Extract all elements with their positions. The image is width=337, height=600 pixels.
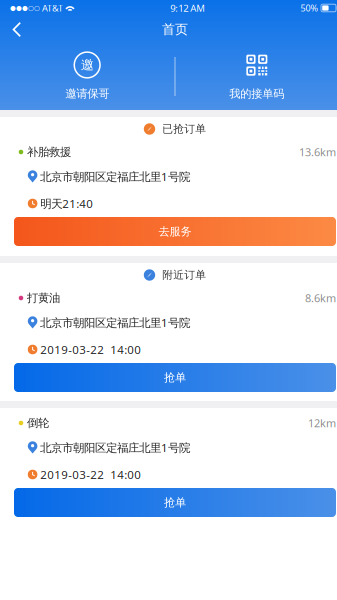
button[interactable]: 抢单 [0,488,337,517]
staticText: 北京市朝阳区定福庄北里1号院 [40,315,190,330]
button[interactable]: 返回 [0,16,36,43]
staticText: ○○ [28,4,40,12]
staticText: 去服务 [158,224,191,238]
staticText: AT&T [40,2,65,14]
staticText: 50% [300,2,318,14]
staticText: 北京市朝阳区定福庄北里1号院 [40,169,190,184]
button[interactable]: 抢单 [0,363,337,392]
staticText: 邀请保哥 [65,86,109,101]
staticText: 抢单 [164,495,186,509]
staticText: 抢单 [164,370,186,384]
staticText: 打黄油 [27,291,60,305]
staticText: 12km [308,416,336,430]
staticText: 首页 [162,21,188,38]
staticText: 9:12 AM [170,1,205,15]
staticText: 已抢订单 [162,122,206,136]
staticText: 2019-03-22 14:00 [40,467,141,482]
staticText: 8.6km [305,291,336,305]
staticText: 倒轮 [27,416,49,430]
staticText: 补胎救援 [27,145,71,159]
staticText: 附近订单 [162,268,206,282]
button[interactable]: 邀 [0,52,174,101]
button[interactable]: 去服务 [0,217,337,246]
staticText: 2019-03-22 14:00 [40,342,141,357]
staticText: 我的接单码 [229,87,284,101]
staticText: ●●● [10,4,28,12]
staticText: 北京市朝阳区定福庄北里1号院 [40,440,190,455]
staticText: 邀 [81,57,94,73]
button[interactable]: 我的接单码 [176,52,337,101]
staticText: 13.6km [299,145,336,159]
staticText: 明天21:40 [40,196,93,211]
